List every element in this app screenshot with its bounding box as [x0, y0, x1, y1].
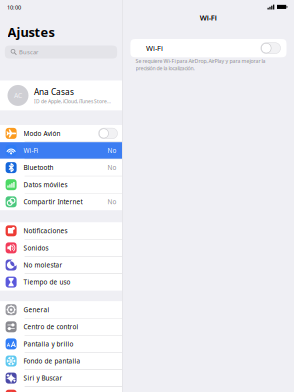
- button[interactable]: Privacidad: [0, 387, 122, 392]
- staticText: AC: [14, 91, 22, 100]
- button[interactable]: Buscar: [5, 45, 117, 59]
- staticText: Se requiere Wi-Fi para AirDrop, AirPlay …: [135, 57, 265, 72]
- button[interactable]: Fondo de pantalla: [0, 353, 122, 369]
- staticText: Datos móviles: [24, 180, 68, 189]
- staticText: Wi-Fi: [146, 43, 163, 53]
- button[interactable]: Siri y Buscar: [0, 370, 122, 386]
- staticText: No: [107, 163, 116, 172]
- button[interactable]: General: [0, 301, 122, 318]
- button[interactable]: Notificaciones: [0, 222, 122, 239]
- staticText: Ajustes: [8, 23, 55, 41]
- staticText: No: [107, 146, 116, 155]
- button[interactable]: Bluetooth: [0, 159, 122, 176]
- staticText: 10:00: [7, 3, 21, 11]
- staticText: Wi-Fi: [24, 146, 39, 155]
- staticText: General: [24, 305, 50, 314]
- staticText: ID de Apple, iCloud, iTunes Store…: [34, 98, 111, 105]
- staticText: Buscar: [19, 48, 38, 56]
- staticText: Centro de control: [24, 322, 79, 331]
- staticText: Compartir Internet: [24, 197, 83, 206]
- staticText: Siri y Buscar: [24, 374, 63, 382]
- staticText: Pantalla y brillo: [24, 339, 74, 348]
- button[interactable]: Wi-Fi: [130, 39, 286, 57]
- staticText: Sonidos: [24, 243, 49, 252]
- staticText: Fondo de pantalla: [24, 357, 81, 365]
- staticText: Bluetooth: [24, 163, 54, 172]
- staticText: Modo Avión: [24, 129, 61, 138]
- staticText: No molestar: [24, 261, 63, 269]
- staticText: Notificaciones: [24, 226, 68, 235]
- button[interactable]: Sonidos: [0, 240, 122, 256]
- button[interactable]: Datos móviles: [0, 176, 122, 193]
- staticText: Ana Casas: [34, 86, 74, 97]
- button[interactable]: Modo Avión: [0, 125, 122, 142]
- staticText: Tiempo de uso: [24, 278, 71, 286]
- button[interactable]: Compartir Internet: [0, 193, 122, 210]
- button[interactable]: Wi-Fi: [0, 142, 122, 159]
- staticText: No: [107, 197, 116, 206]
- button[interactable]: Centro de control: [0, 318, 122, 335]
- button[interactable]: AC: [0, 80, 122, 110]
- button[interactable]: Tiempo de uso: [0, 274, 122, 290]
- button[interactable]: No molestar: [0, 257, 122, 273]
- staticText: Wi-Fi: [200, 12, 217, 23]
- button[interactable]: Pantalla y brillo: [0, 336, 122, 352]
